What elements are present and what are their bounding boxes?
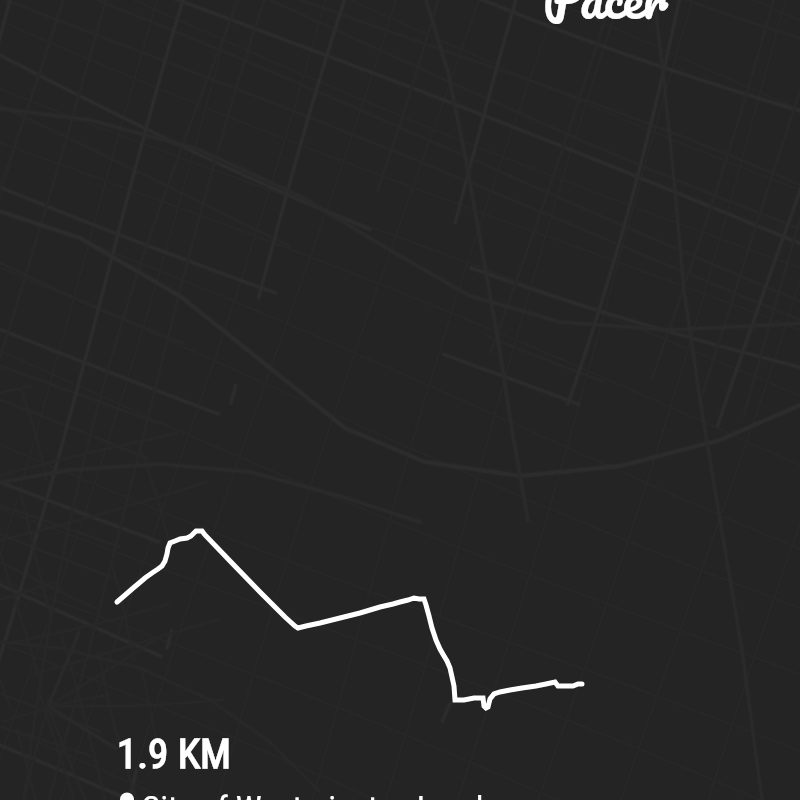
other: Location xyxy=(114,787,140,800)
button[interactable]: Pacer xyxy=(543,0,668,43)
staticText: City of Westminster, London xyxy=(141,788,517,800)
button[interactable]: Location xyxy=(114,787,516,800)
staticText: 1.9 KM xyxy=(117,730,232,778)
